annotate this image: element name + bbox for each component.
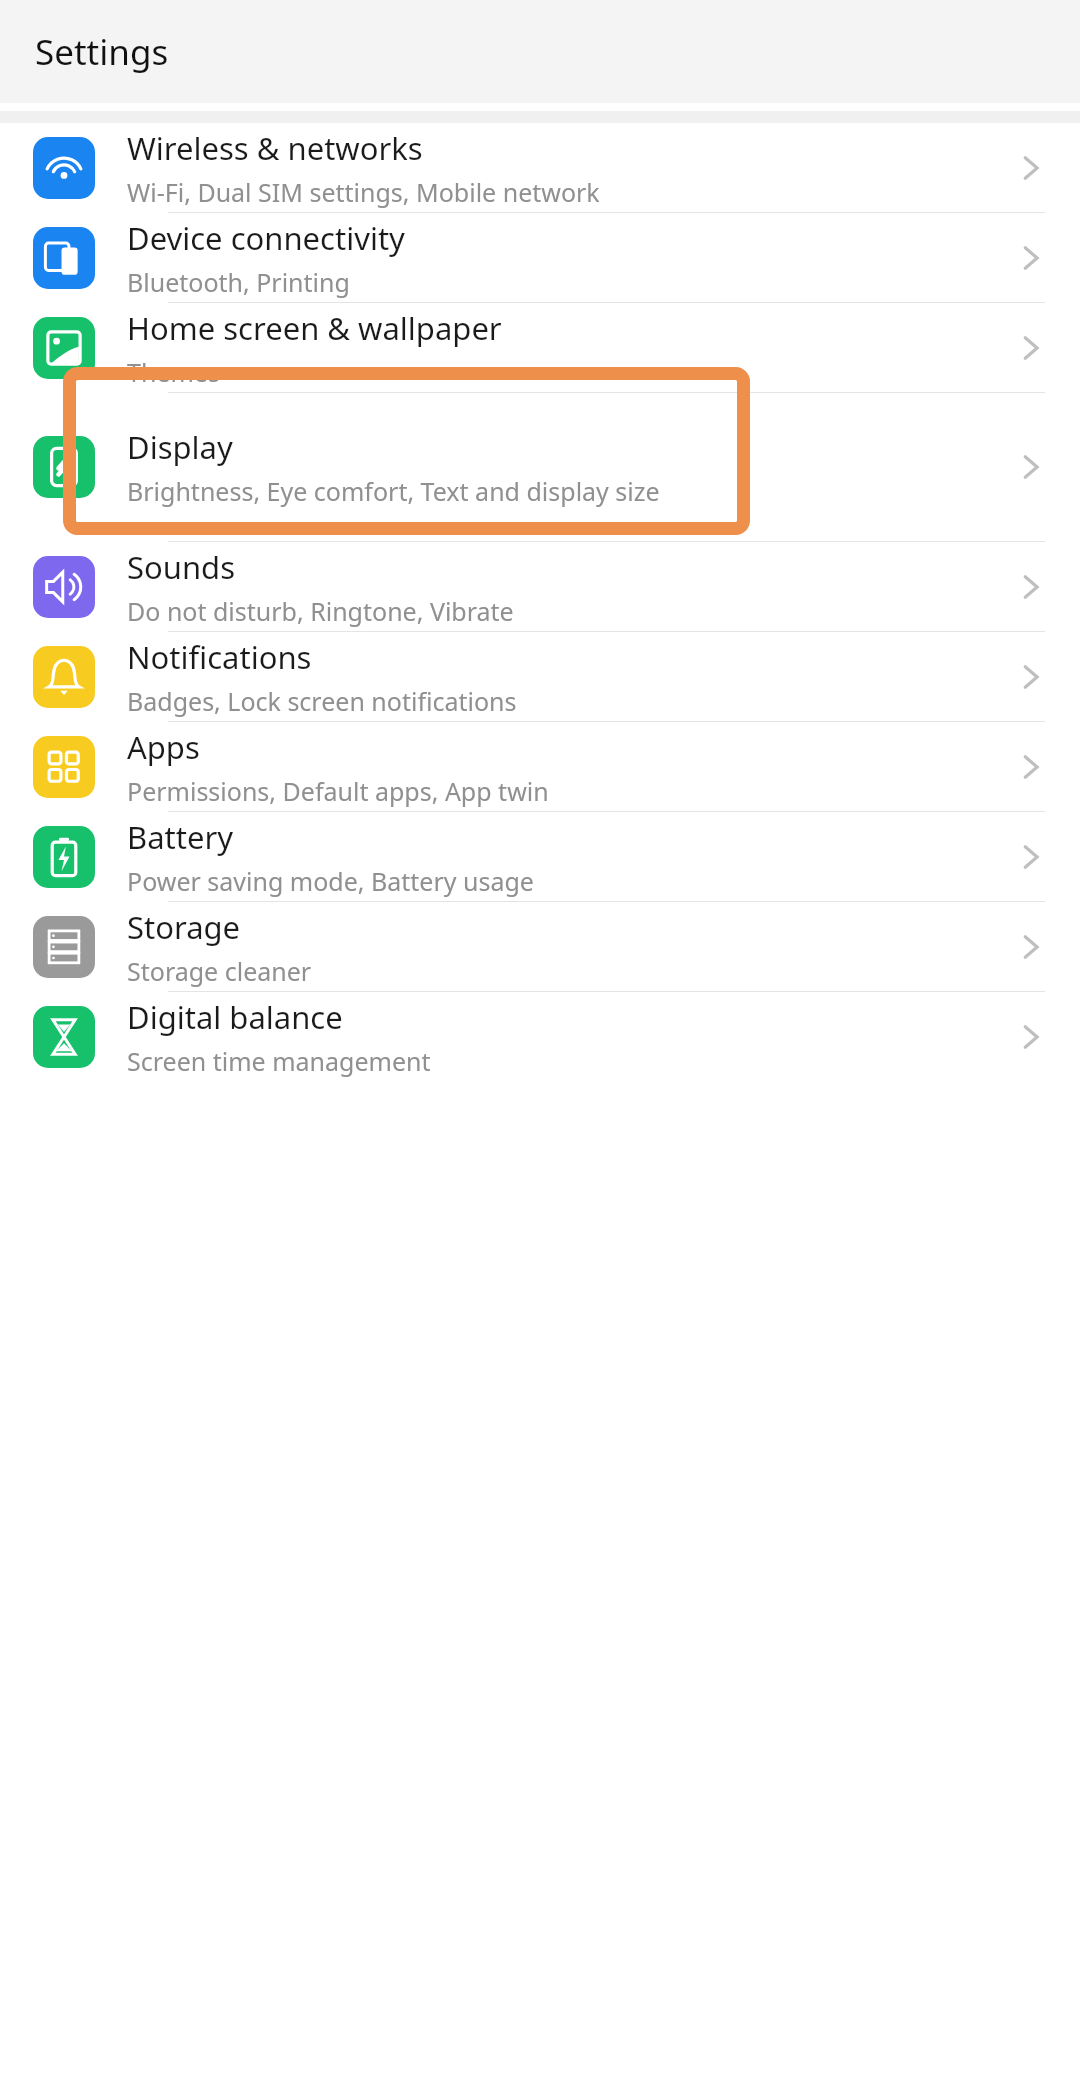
staticText: Wireless & networks (127, 127, 423, 169)
staticText: Settings (35, 28, 169, 76)
button[interactable]: Home screen & wallpaper (0, 303, 1080, 392)
button[interactable]: Device connectivity (0, 213, 1080, 302)
button[interactable]: Apps (0, 722, 1080, 811)
staticText: Notifications (127, 636, 312, 678)
button[interactable]: Battery (0, 812, 1080, 901)
staticText: Power saving mode, Battery usage (127, 864, 534, 898)
button[interactable]: Display (0, 393, 1080, 541)
staticText: Apps (127, 726, 200, 768)
staticText: Device connectivity (127, 217, 405, 259)
staticText: Screen time management (127, 1044, 431, 1078)
staticText: Permissions, Default apps, App twin (127, 774, 549, 808)
button[interactable]: Storage (0, 902, 1080, 991)
staticText: Display (127, 426, 233, 468)
staticText: Sounds (127, 546, 236, 588)
staticText: Brightness, Eye comfort, Text and displa… (127, 474, 660, 508)
button[interactable]: Wireless & networks (0, 123, 1080, 212)
button[interactable]: Digital balance (0, 992, 1080, 1081)
staticText: Storage cleaner (127, 954, 312, 988)
staticText: Battery (127, 816, 234, 858)
staticText: Bluetooth, Printing (127, 265, 350, 299)
staticText: Wi-Fi, Dual SIM settings, Mobile network (127, 175, 600, 209)
button[interactable]: Sounds (0, 542, 1080, 631)
button[interactable]: Notifications (0, 632, 1080, 721)
staticText: Themes (127, 355, 220, 389)
staticText: Do not disturb, Ringtone, Vibrate (127, 594, 514, 628)
staticText: Storage (127, 906, 241, 948)
staticText: Home screen & wallpaper (127, 307, 502, 349)
staticText: Digital balance (127, 996, 343, 1038)
staticText: Badges, Lock screen notifications (127, 684, 517, 718)
